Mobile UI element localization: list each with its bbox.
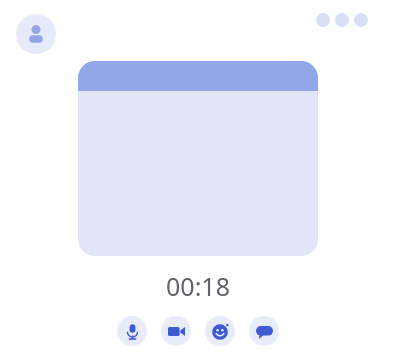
- button[interactable]: Account: [16, 14, 56, 54]
- staticText: 00:18: [166, 269, 230, 303]
- button[interactable]: Camera: [161, 316, 191, 346]
- button[interactable]: Chat: [249, 316, 279, 346]
- button[interactable]: Emoji reactions: [205, 316, 235, 346]
- button[interactable]: More options: [316, 8, 380, 32]
- button[interactable]: [78, 61, 318, 256]
- button[interactable]: Microphone: [117, 316, 147, 346]
